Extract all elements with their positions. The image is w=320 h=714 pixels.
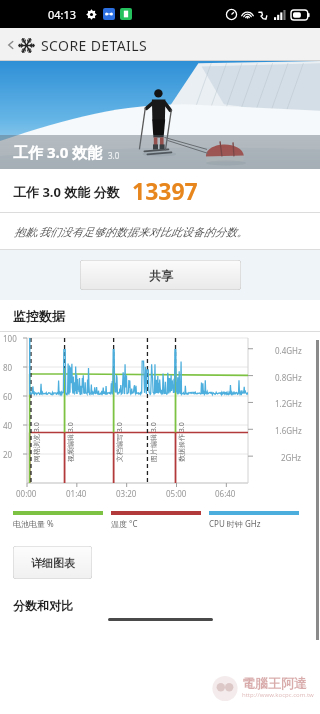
staticText: 03:20 (116, 488, 137, 499)
button[interactable]: Back (4, 32, 18, 58)
staticText: 温度 °C (111, 518, 138, 529)
staticText: 分数和对比 (13, 598, 73, 613)
staticText: 60 (3, 391, 13, 402)
staticText: 文档编写 3.0 (115, 422, 125, 462)
staticText: 1.6GHz (275, 425, 302, 436)
staticText: 13397 (132, 175, 198, 206)
staticText: 2GHz (281, 452, 302, 463)
staticText: 80 (3, 362, 13, 373)
staticText: 06:40 (215, 488, 236, 499)
staticText: 100 (3, 333, 17, 344)
staticText: 20 (3, 449, 13, 460)
staticText: 工作 3.0 效能 (13, 142, 103, 162)
staticText: 抱歉,我们没有足够的数据来对比此设备的分数。 (14, 224, 248, 239)
staticText: 工作 3.0 效能 分数 (13, 183, 120, 201)
staticText: 04:13 (48, 7, 77, 22)
staticText: http://www.kocpc.com.tw (242, 691, 314, 699)
staticText: 0.4GHz (275, 345, 302, 356)
staticText: CPU 时钟 GHz (209, 518, 261, 529)
staticText: 40 (3, 420, 13, 431)
staticText: 電腦王阿達 (242, 675, 307, 691)
staticText: 00:00 (16, 488, 37, 499)
staticText: 共享 (149, 268, 173, 283)
staticText: 监控数据 (13, 308, 65, 324)
staticText: 1.2GHz (275, 398, 302, 409)
staticText: 网格浏览 3.0 (32, 422, 42, 462)
staticText: 电池电量 % (13, 518, 54, 529)
staticText: 数据操作 3.0 (177, 422, 187, 462)
staticText: 图片编辑 3.0 (149, 422, 159, 462)
staticText: 01:40 (66, 488, 87, 499)
staticText: 0.8GHz (275, 372, 302, 383)
staticText: 05:00 (166, 488, 187, 499)
staticText: 详细图表 (31, 556, 75, 570)
staticText: 视频编辑 3.0 (66, 422, 76, 462)
staticText: SCORE DETAILS (41, 36, 148, 55)
button[interactable]: 共享 (80, 260, 241, 290)
button[interactable]: 详细图表 (13, 546, 92, 579)
staticText: 3.0 (108, 150, 120, 161)
